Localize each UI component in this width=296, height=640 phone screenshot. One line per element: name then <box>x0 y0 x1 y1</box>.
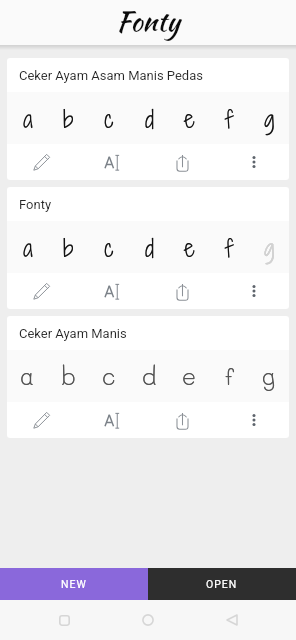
button[interactable]: More options <box>218 144 289 180</box>
staticText: e <box>182 361 196 391</box>
staticText: c <box>104 231 114 264</box>
button[interactable]: Edit <box>7 273 77 309</box>
staticText: b <box>61 361 76 391</box>
button[interactable]: Fonty <box>7 187 289 309</box>
staticText: g <box>262 361 276 391</box>
button[interactable]: More options <box>218 402 289 438</box>
button[interactable]: f <box>209 350 249 402</box>
staticText: e <box>184 102 195 135</box>
button[interactable]: g <box>249 350 289 402</box>
staticText: g <box>264 231 275 264</box>
staticText: c <box>104 102 114 135</box>
staticText: f <box>225 361 234 391</box>
staticText: c <box>102 361 116 391</box>
staticText: b <box>63 102 74 135</box>
staticText: a <box>23 102 33 135</box>
button[interactable]: d <box>129 92 169 144</box>
staticText: e <box>184 231 195 264</box>
button[interactable]: Ceker Ayam Manis <box>7 316 289 438</box>
staticText: f <box>225 102 234 135</box>
button[interactable]: Edit <box>7 402 77 438</box>
button[interactable]: a <box>7 350 48 402</box>
staticText: g <box>264 231 275 264</box>
button[interactable]: Text fields <box>77 144 147 180</box>
button[interactable]: c <box>89 350 129 402</box>
staticText: b <box>63 231 74 264</box>
button[interactable]: Recents <box>44 600 84 640</box>
staticText: c <box>104 102 114 135</box>
button[interactable]: b <box>48 92 89 144</box>
button[interactable]: g <box>249 221 289 273</box>
button[interactable]: Back <box>212 600 252 640</box>
staticText: a <box>20 361 35 391</box>
staticText: d <box>145 102 154 135</box>
button[interactable]: Text fields <box>77 273 147 309</box>
staticText: e <box>184 231 195 264</box>
button[interactable]: OPEN <box>148 568 296 600</box>
staticText: c <box>102 361 116 391</box>
button[interactable]: Edit <box>7 144 77 180</box>
staticText: Ceker Ayam Asam Manis Pedas <box>19 68 203 83</box>
button[interactable]: b <box>48 221 89 273</box>
button[interactable]: c <box>89 221 129 273</box>
button[interactable]: a <box>7 221 48 273</box>
button[interactable]: f <box>209 92 249 144</box>
button[interactable]: Home <box>128 600 168 640</box>
button[interactable]: d <box>129 221 169 273</box>
staticText: Fonty <box>116 2 180 41</box>
staticText: OPEN <box>206 578 238 590</box>
staticText: b <box>61 361 76 391</box>
staticText: Ceker Ayam Manis <box>19 326 127 341</box>
staticText: f <box>225 231 234 264</box>
button[interactable]: b <box>48 350 89 402</box>
staticText: c <box>104 231 114 264</box>
staticText: d <box>145 231 154 264</box>
staticText: d <box>145 102 154 135</box>
staticText: e <box>182 361 196 391</box>
button[interactable]: NEW <box>0 568 148 600</box>
staticText: d <box>142 361 157 391</box>
button[interactable]: Text fields <box>77 402 147 438</box>
staticText: b <box>63 102 74 135</box>
staticText: e <box>184 102 195 135</box>
staticText: Fonty <box>19 197 52 212</box>
staticText: a <box>23 231 33 264</box>
staticText: g <box>264 102 275 135</box>
staticText: g <box>264 102 275 135</box>
button[interactable]: e <box>169 221 209 273</box>
button[interactable]: Share <box>147 273 218 309</box>
staticText: a <box>23 231 33 264</box>
button[interactable]: e <box>169 350 209 402</box>
staticText: d <box>145 231 154 264</box>
staticText: a <box>20 361 35 391</box>
staticText: f <box>225 231 234 264</box>
button[interactable]: c <box>89 92 129 144</box>
staticText: NEW <box>61 578 87 590</box>
button[interactable]: Share <box>147 402 218 438</box>
staticText: a <box>23 102 33 135</box>
staticText: f <box>225 361 234 391</box>
button[interactable]: f <box>209 221 249 273</box>
button[interactable]: More options <box>218 273 289 309</box>
button[interactable]: Ceker Ayam Asam Manis Pedas <box>7 58 289 180</box>
staticText: f <box>225 102 234 135</box>
staticText: g <box>262 361 276 391</box>
button[interactable]: e <box>169 92 209 144</box>
staticText: b <box>63 231 74 264</box>
button[interactable]: a <box>7 92 48 144</box>
button[interactable]: d <box>129 350 169 402</box>
button[interactable]: Share <box>147 144 218 180</box>
staticText: d <box>142 361 157 391</box>
button[interactable]: g <box>249 92 289 144</box>
